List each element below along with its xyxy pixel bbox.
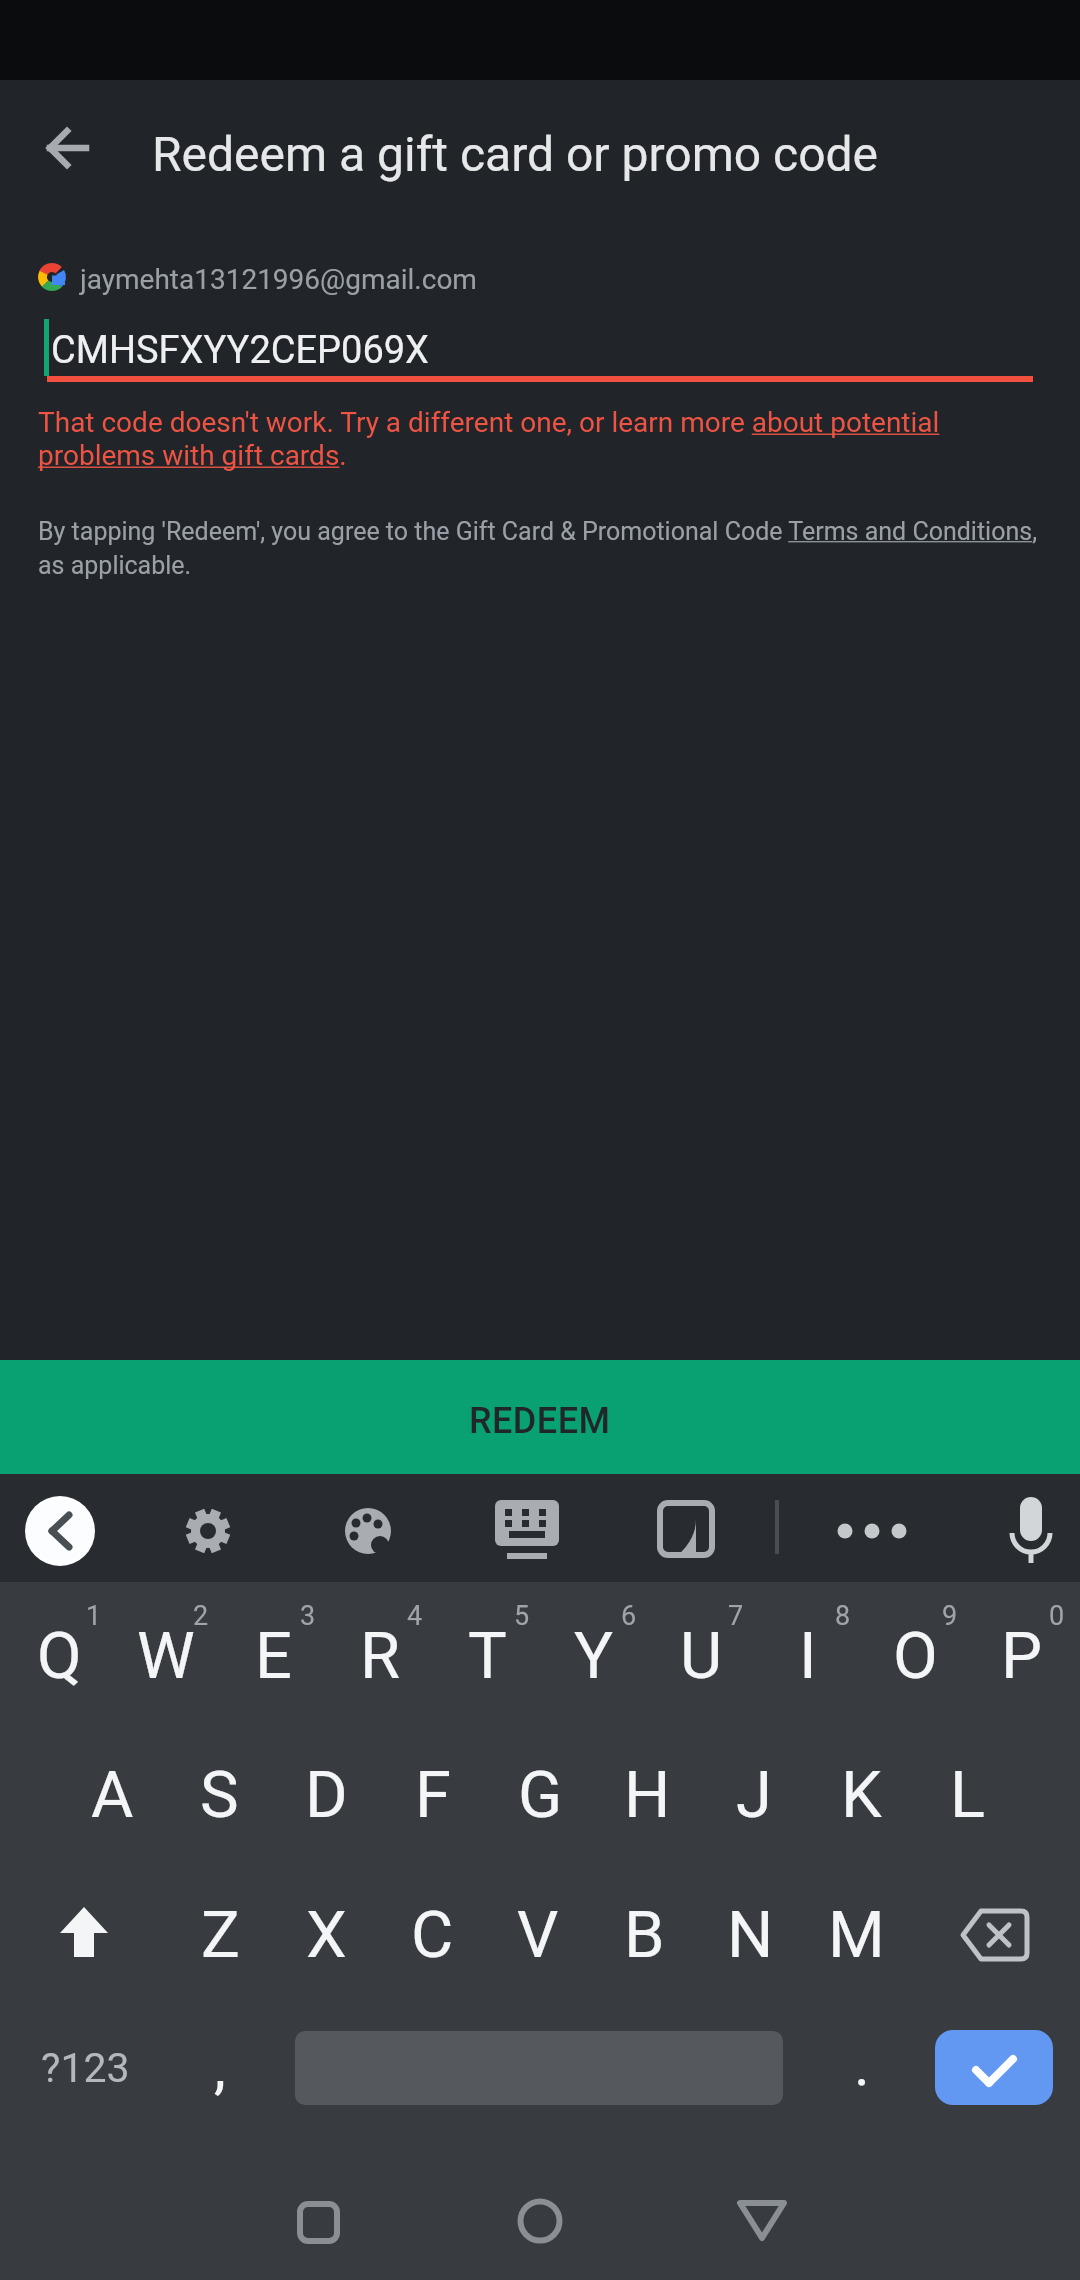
staticText: REDEEM [469, 1400, 611, 1442]
staticText: Z [201, 1897, 240, 1973]
staticText: H [624, 1757, 671, 1833]
staticText: ?123 [41, 2044, 130, 2092]
staticText: J [736, 1757, 772, 1833]
staticText: L [950, 1757, 986, 1833]
button[interactable] [333, 1494, 403, 1564]
staticText: as applicable. [38, 551, 192, 580]
staticText: problems with gift cards. [38, 439, 347, 472]
staticText: 2 [193, 1600, 209, 1632]
button[interactable] [36, 118, 96, 178]
staticText: T [468, 1618, 507, 1694]
staticText: C [411, 1897, 454, 1973]
staticText: X [306, 1897, 347, 1973]
button[interactable] [44, 1895, 124, 1975]
staticText: G [518, 1757, 563, 1833]
staticText: S [200, 1757, 239, 1833]
staticText: Redeem a gift card or promo code [152, 126, 879, 182]
staticText: D [305, 1757, 348, 1833]
button[interactable] [727, 2186, 797, 2256]
staticText: W [137, 1618, 195, 1694]
button[interactable] [492, 1494, 562, 1564]
staticText: 1 [86, 1600, 102, 1632]
staticText: E [255, 1618, 292, 1694]
staticText: 6 [621, 1600, 637, 1632]
staticText: 4 [407, 1600, 423, 1632]
staticText: M [828, 1897, 885, 1973]
staticText: That code doesn't work. Try a different … [38, 406, 940, 439]
staticText: , [214, 2031, 226, 2101]
staticText: jaymehta13121996@gmail.com [80, 263, 477, 296]
button[interactable] [25, 1494, 95, 1564]
staticText: O [893, 1618, 938, 1694]
staticText: 7 [728, 1600, 744, 1632]
staticText: CMHSFXYY2CEP069X [51, 328, 429, 373]
staticText: P [1001, 1618, 1043, 1694]
button[interactable] [996, 1494, 1066, 1564]
button[interactable] [505, 2186, 575, 2256]
staticText: A [91, 1757, 134, 1833]
staticText: By tapping 'Redeem', you agree to the Gi… [38, 517, 1038, 546]
staticText: 5 [514, 1600, 530, 1632]
button[interactable] [837, 1494, 907, 1564]
staticText: 0 [1049, 1600, 1065, 1632]
button[interactable] [0, 1360, 1080, 1474]
staticText: V [517, 1897, 559, 1973]
staticText: K [841, 1757, 882, 1833]
button[interactable] [173, 1494, 243, 1564]
staticText: 3 [300, 1600, 316, 1632]
staticText: I [799, 1618, 817, 1694]
staticText: . [854, 2029, 870, 2099]
staticText: Q [37, 1618, 82, 1694]
button[interactable] [651, 1494, 721, 1564]
button[interactable] [935, 2030, 1053, 2105]
button[interactable] [955, 1895, 1035, 1975]
staticText: 8 [835, 1600, 851, 1632]
staticText: N [727, 1897, 774, 1973]
staticText: U [680, 1618, 723, 1694]
staticText: B [624, 1897, 665, 1973]
staticText: 9 [942, 1600, 958, 1632]
staticText: R [360, 1618, 401, 1694]
staticText: Y [574, 1618, 614, 1694]
staticText: F [415, 1757, 451, 1833]
button[interactable] [283, 2186, 353, 2256]
